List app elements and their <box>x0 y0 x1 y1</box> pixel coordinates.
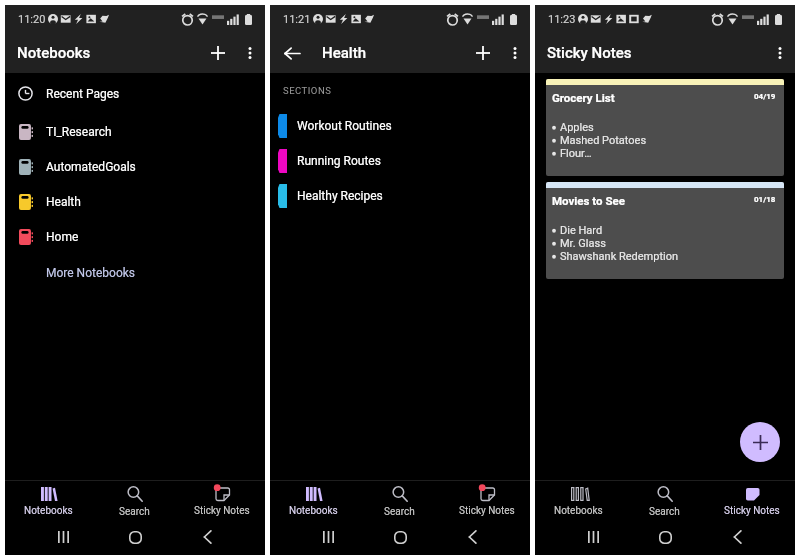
staticText: Healthy Recipes <box>297 189 383 203</box>
button[interactable]: Back <box>460 528 484 546</box>
button[interactable]: AutomatedGoals <box>5 149 265 184</box>
staticText: Sticky Notes <box>547 44 632 62</box>
button[interactable]: More options <box>235 38 265 68</box>
staticText: Mr. Glass <box>560 237 606 250</box>
button[interactable]: Home <box>388 528 412 546</box>
staticText: Notebooks <box>289 505 338 517</box>
button[interactable]: Add <box>201 36 235 70</box>
button[interactable]: TI_Research <box>5 114 265 149</box>
staticText: 11:20 <box>18 13 46 26</box>
staticText: Mashed Potatoes <box>560 134 647 147</box>
button[interactable]: Search <box>356 481 443 522</box>
button[interactable]: Running Routes <box>270 143 530 178</box>
button[interactable]: Add note <box>740 422 780 462</box>
staticText: Sticky Notes <box>459 505 515 517</box>
staticText: 11:23 <box>548 13 576 26</box>
button[interactable]: Home <box>653 528 677 546</box>
staticText: Home <box>46 230 79 244</box>
button[interactable]: Sticky Notes <box>708 481 795 522</box>
staticText: Apples <box>560 121 594 134</box>
staticText: Notebooks <box>17 44 91 62</box>
button[interactable]: More options <box>500 38 530 68</box>
staticText: Search <box>384 506 415 518</box>
staticText: Grocery List <box>552 91 615 104</box>
button[interactable]: Home <box>5 219 265 254</box>
button[interactable]: More Notebooks <box>5 254 265 291</box>
button[interactable]: Health <box>5 184 265 219</box>
staticText: Search <box>119 506 150 518</box>
button[interactable]: Back <box>725 528 749 546</box>
button[interactable]: Recent Pages <box>5 76 265 111</box>
staticText: Movies to See <box>552 194 625 207</box>
button[interactable]: Workout Routines <box>270 108 530 143</box>
staticText: AutomatedGoals <box>46 160 136 174</box>
button[interactable]: Add <box>466 36 500 70</box>
staticText: 11:21 <box>283 13 311 26</box>
staticText: Flour… <box>560 147 592 160</box>
button[interactable]: Back <box>195 528 219 546</box>
button[interactable]: Notebooks <box>270 481 356 522</box>
button[interactable]: Sticky Notes <box>443 481 530 522</box>
button[interactable]: Sticky Notes <box>178 481 265 522</box>
button[interactable]: Movies to See <box>546 182 784 279</box>
staticText: Health <box>322 44 366 62</box>
staticText: Recent Pages <box>46 87 120 101</box>
staticText: Shawshank Redemption <box>560 250 679 263</box>
button[interactable]: Healthy Recipes <box>270 178 530 213</box>
staticText: Sticky Notes <box>194 505 250 517</box>
staticText: Workout Routines <box>297 119 392 133</box>
staticText: Running Routes <box>297 154 381 168</box>
button[interactable]: Recent apps <box>316 528 340 546</box>
staticText: TI_Research <box>46 125 112 139</box>
button[interactable]: More options <box>765 38 795 68</box>
button[interactable]: Notebooks <box>535 481 621 522</box>
button[interactable]: Recent apps <box>51 528 75 546</box>
button[interactable]: Home <box>123 528 147 546</box>
staticText: Health <box>46 195 81 209</box>
staticText: More Notebooks <box>46 266 136 280</box>
staticText: SECTIONS <box>283 85 332 96</box>
staticText: Notebooks <box>554 505 603 517</box>
staticText: Sticky Notes <box>724 505 780 517</box>
button[interactable]: Back <box>273 34 311 72</box>
staticText: Search <box>649 506 680 518</box>
staticText: Die Hard <box>560 224 603 237</box>
staticText: 04/19 <box>754 92 776 101</box>
staticText: 01/18 <box>754 195 776 204</box>
staticText: Notebooks <box>24 505 73 517</box>
button[interactable]: Grocery List <box>546 79 784 176</box>
button[interactable]: Recent apps <box>581 528 605 546</box>
button[interactable]: Search <box>621 481 708 522</box>
button[interactable]: Notebooks <box>5 481 91 522</box>
button[interactable]: Search <box>91 481 178 522</box>
